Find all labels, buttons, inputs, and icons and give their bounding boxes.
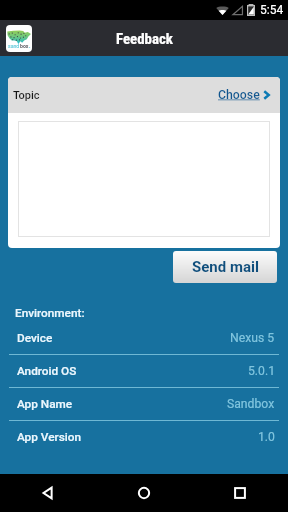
button[interactable]: Home bbox=[96, 474, 192, 512]
staticText: App Version bbox=[17, 430, 82, 444]
button[interactable]: App Name bbox=[0, 388, 288, 421]
button[interactable]: App logo bbox=[6, 25, 32, 52]
staticText: Topic bbox=[13, 89, 40, 102]
staticText: . bbox=[29, 43, 31, 49]
button[interactable]: Recent apps bbox=[192, 474, 288, 512]
staticText: Device bbox=[17, 331, 53, 345]
button[interactable]: Topic bbox=[8, 77, 280, 113]
button[interactable]: Device bbox=[0, 322, 288, 355]
staticText: Choose bbox=[218, 88, 260, 102]
staticText: 1.0 bbox=[258, 430, 275, 444]
staticText: Environment: bbox=[15, 306, 85, 320]
staticText: 5.0.1 bbox=[248, 364, 275, 378]
staticText: Nexus 5 bbox=[230, 331, 275, 345]
staticText: box bbox=[20, 43, 29, 49]
button[interactable]: Back bbox=[0, 474, 96, 512]
staticText: 5:54 bbox=[260, 3, 284, 17]
button[interactable]: Android OS bbox=[0, 355, 288, 388]
staticText: sand bbox=[8, 43, 20, 49]
button[interactable]: Send mail bbox=[173, 251, 277, 283]
staticText: Sandbox bbox=[227, 397, 275, 411]
staticText: Send mail bbox=[192, 258, 259, 276]
button[interactable]: App Version bbox=[0, 421, 288, 453]
staticText: Feedback bbox=[116, 30, 173, 47]
staticText: Android OS bbox=[17, 364, 77, 378]
staticText: App Name bbox=[17, 397, 73, 411]
